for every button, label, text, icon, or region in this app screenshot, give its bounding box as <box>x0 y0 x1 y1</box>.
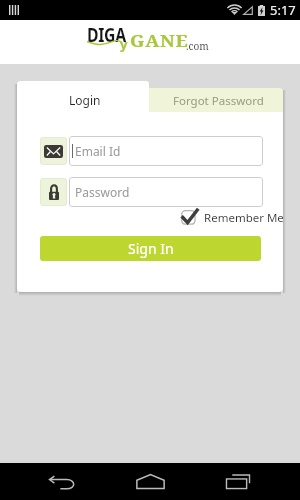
staticText: Password <box>75 184 130 200</box>
button[interactable]: Password <box>69 177 263 207</box>
button[interactable]: Home <box>124 463 176 500</box>
staticText: .com <box>186 39 209 53</box>
staticText: 5:17 <box>270 1 296 19</box>
staticText: Email Id <box>75 143 121 159</box>
button[interactable]: Remember Me <box>181 209 283 226</box>
button[interactable]: Back <box>36 463 88 500</box>
staticText: y <box>120 35 128 53</box>
staticText: DIGA <box>87 21 126 48</box>
button[interactable]: Sign In <box>40 236 261 261</box>
button[interactable]: Email Id <box>69 136 263 166</box>
staticText: Sign In <box>128 239 174 258</box>
staticText: Forgot Password <box>173 93 264 109</box>
button[interactable]: Forgot Password <box>149 88 283 112</box>
button[interactable]: Login <box>17 81 149 112</box>
staticText: GANE <box>130 29 189 52</box>
button[interactable]: Recent apps <box>212 463 264 500</box>
staticText: Remember Me <box>204 210 283 226</box>
staticText: Login <box>69 92 101 108</box>
